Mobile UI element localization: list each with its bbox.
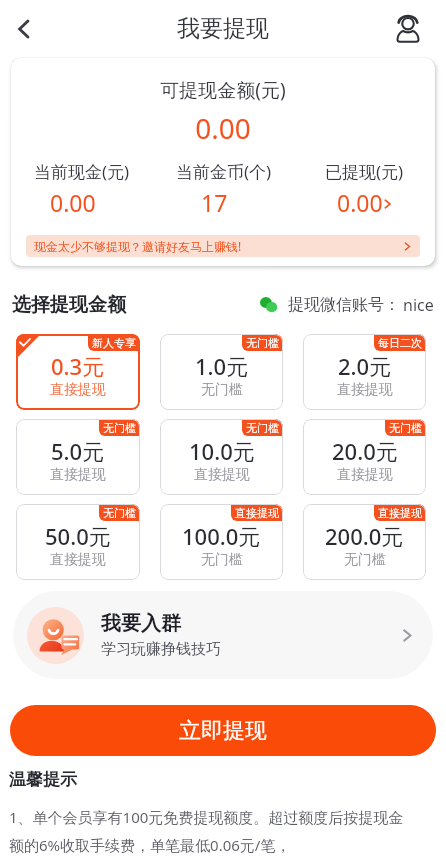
staticText: nice: [403, 294, 434, 316]
staticText: 选择提现金额: [12, 293, 126, 317]
staticText: 直接提现: [50, 551, 106, 569]
staticText: 可提现金额(元): [11, 77, 435, 103]
button[interactable]: Back: [2, 7, 46, 51]
staticText: 无门槛: [201, 551, 243, 569]
button[interactable]: Customer service: [386, 7, 430, 51]
staticText: 0.00: [337, 187, 383, 218]
staticText: 直接提现: [194, 466, 250, 484]
staticText: 0.00: [11, 109, 435, 147]
staticText: 100.0元: [182, 521, 261, 551]
button[interactable]: 立即提现: [10, 705, 436, 756]
staticText: 已提现(元): [325, 160, 404, 183]
button[interactable]: 直接提现: [303, 504, 426, 580]
button[interactable]: 无门槛: [16, 504, 140, 580]
staticText: 无门槛: [201, 381, 243, 399]
staticText: 立即提现: [179, 717, 267, 745]
staticText: 无门槛: [389, 421, 422, 435]
button[interactable]: 无门槛: [160, 334, 283, 410]
button[interactable]: 每日二次: [303, 334, 426, 410]
staticText: 2.0元: [338, 351, 392, 381]
staticText: 学习玩赚挣钱技巧: [101, 640, 221, 659]
staticText: 直接提现: [235, 506, 279, 520]
staticText: 温馨提示: [9, 769, 77, 790]
staticText: 50.0元: [45, 521, 111, 551]
button[interactable]: 无门槛: [160, 419, 283, 495]
staticText: 我要入群: [101, 611, 181, 636]
staticText: 当前现金(元): [34, 160, 130, 183]
button[interactable]: 我要入群: [13, 591, 433, 679]
staticText: 0.00: [50, 187, 96, 218]
button[interactable]: 无门槛: [303, 419, 426, 495]
staticText: 0.3元: [51, 351, 105, 381]
staticText: 17: [201, 187, 228, 218]
staticText: 直接提现: [378, 506, 422, 520]
staticText: 直接提现: [337, 381, 393, 399]
button[interactable]: 新人专享: [16, 334, 140, 410]
staticText: 无门槛: [246, 421, 279, 435]
button[interactable]: 现金太少不够提现？邀请好友马上赚钱!: [26, 235, 420, 257]
staticText: 无门槛: [103, 421, 136, 435]
staticText: 直接提现: [50, 381, 106, 399]
staticText: 无门槛: [344, 551, 386, 569]
staticText: 提现微信账号：: [288, 295, 400, 315]
staticText: 10.0元: [189, 436, 255, 466]
button[interactable]: 无门槛: [16, 419, 140, 495]
staticText: 1、单个会员享有100元免费提现额度。超过额度后按提现金 额的6%收取手续费，单…: [9, 807, 404, 856]
staticText: 无门槛: [246, 336, 279, 350]
staticText: 5.0元: [51, 436, 105, 466]
staticText: 200.0元: [325, 521, 404, 551]
staticText: 直接提现: [337, 466, 393, 484]
staticText: 无门槛: [103, 506, 136, 520]
staticText: 20.0元: [332, 436, 398, 466]
staticText: 现金太少不够提现？邀请好友马上赚钱!: [34, 238, 242, 254]
staticText: 1.0元: [195, 351, 249, 381]
staticText: 直接提现: [50, 466, 106, 484]
staticText: 新人专享: [92, 336, 136, 350]
button[interactable]: 直接提现: [160, 504, 283, 580]
staticText: 每日二次: [378, 336, 422, 350]
staticText: 我要提现: [177, 14, 269, 43]
staticText: 当前金币(个): [176, 160, 272, 183]
